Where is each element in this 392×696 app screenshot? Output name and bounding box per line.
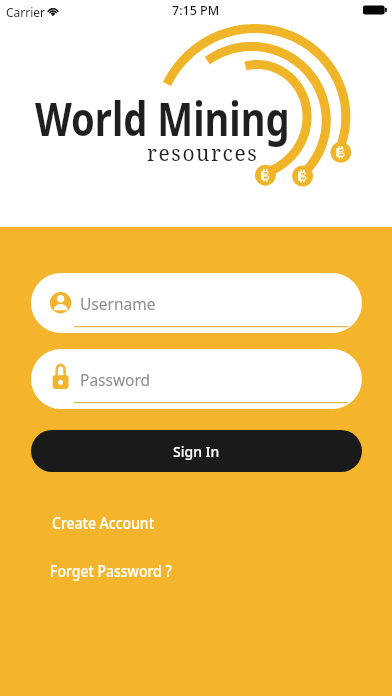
- staticText: resources: [147, 139, 259, 168]
- staticText: Create Account: [52, 512, 154, 534]
- button[interactable]: Password: [31, 349, 362, 409]
- button[interactable]: Username: [31, 273, 362, 333]
- button[interactable]: Sign In: [31, 430, 362, 472]
- staticText: 7:15 PM: [172, 2, 220, 19]
- staticText: World Mining: [35, 87, 290, 150]
- staticText: Password: [80, 369, 151, 390]
- staticText: Carrier: [6, 4, 46, 20]
- staticText: Forget Password ?: [50, 560, 172, 582]
- button[interactable]: Create Account: [52, 512, 154, 534]
- staticText: Username: [80, 293, 156, 314]
- staticText: Sign In: [173, 442, 220, 461]
- button[interactable]: Forget Password ?: [50, 560, 172, 582]
